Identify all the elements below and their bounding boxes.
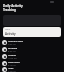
button[interactable]: Cycling (0, 53, 64, 60)
button[interactable]: Today (3, 27, 61, 37)
button[interactable]: Yoga (0, 67, 64, 72)
staticText: Activity (5, 32, 16, 36)
staticText: 8:30 AM (8, 50, 16, 53)
staticText: 7:00 AM (8, 43, 16, 46)
staticText: Swimming (8, 61, 20, 64)
staticText: 7:45 PM (8, 70, 16, 72)
button[interactable]: Morning walk (0, 39, 64, 46)
staticText: Running (8, 47, 18, 50)
staticText: Daily Activity Tracking (3, 4, 23, 12)
staticText: Today (5, 28, 11, 31)
button[interactable]: Swimming (0, 60, 64, 67)
staticText: Cycling (8, 54, 16, 57)
staticText: 12:00 PM (8, 57, 17, 60)
button[interactable]: Running (0, 46, 64, 53)
staticText: Yoga (8, 67, 14, 70)
staticText: Morning walk (8, 40, 24, 43)
staticText: 4:15 PM (8, 64, 16, 67)
